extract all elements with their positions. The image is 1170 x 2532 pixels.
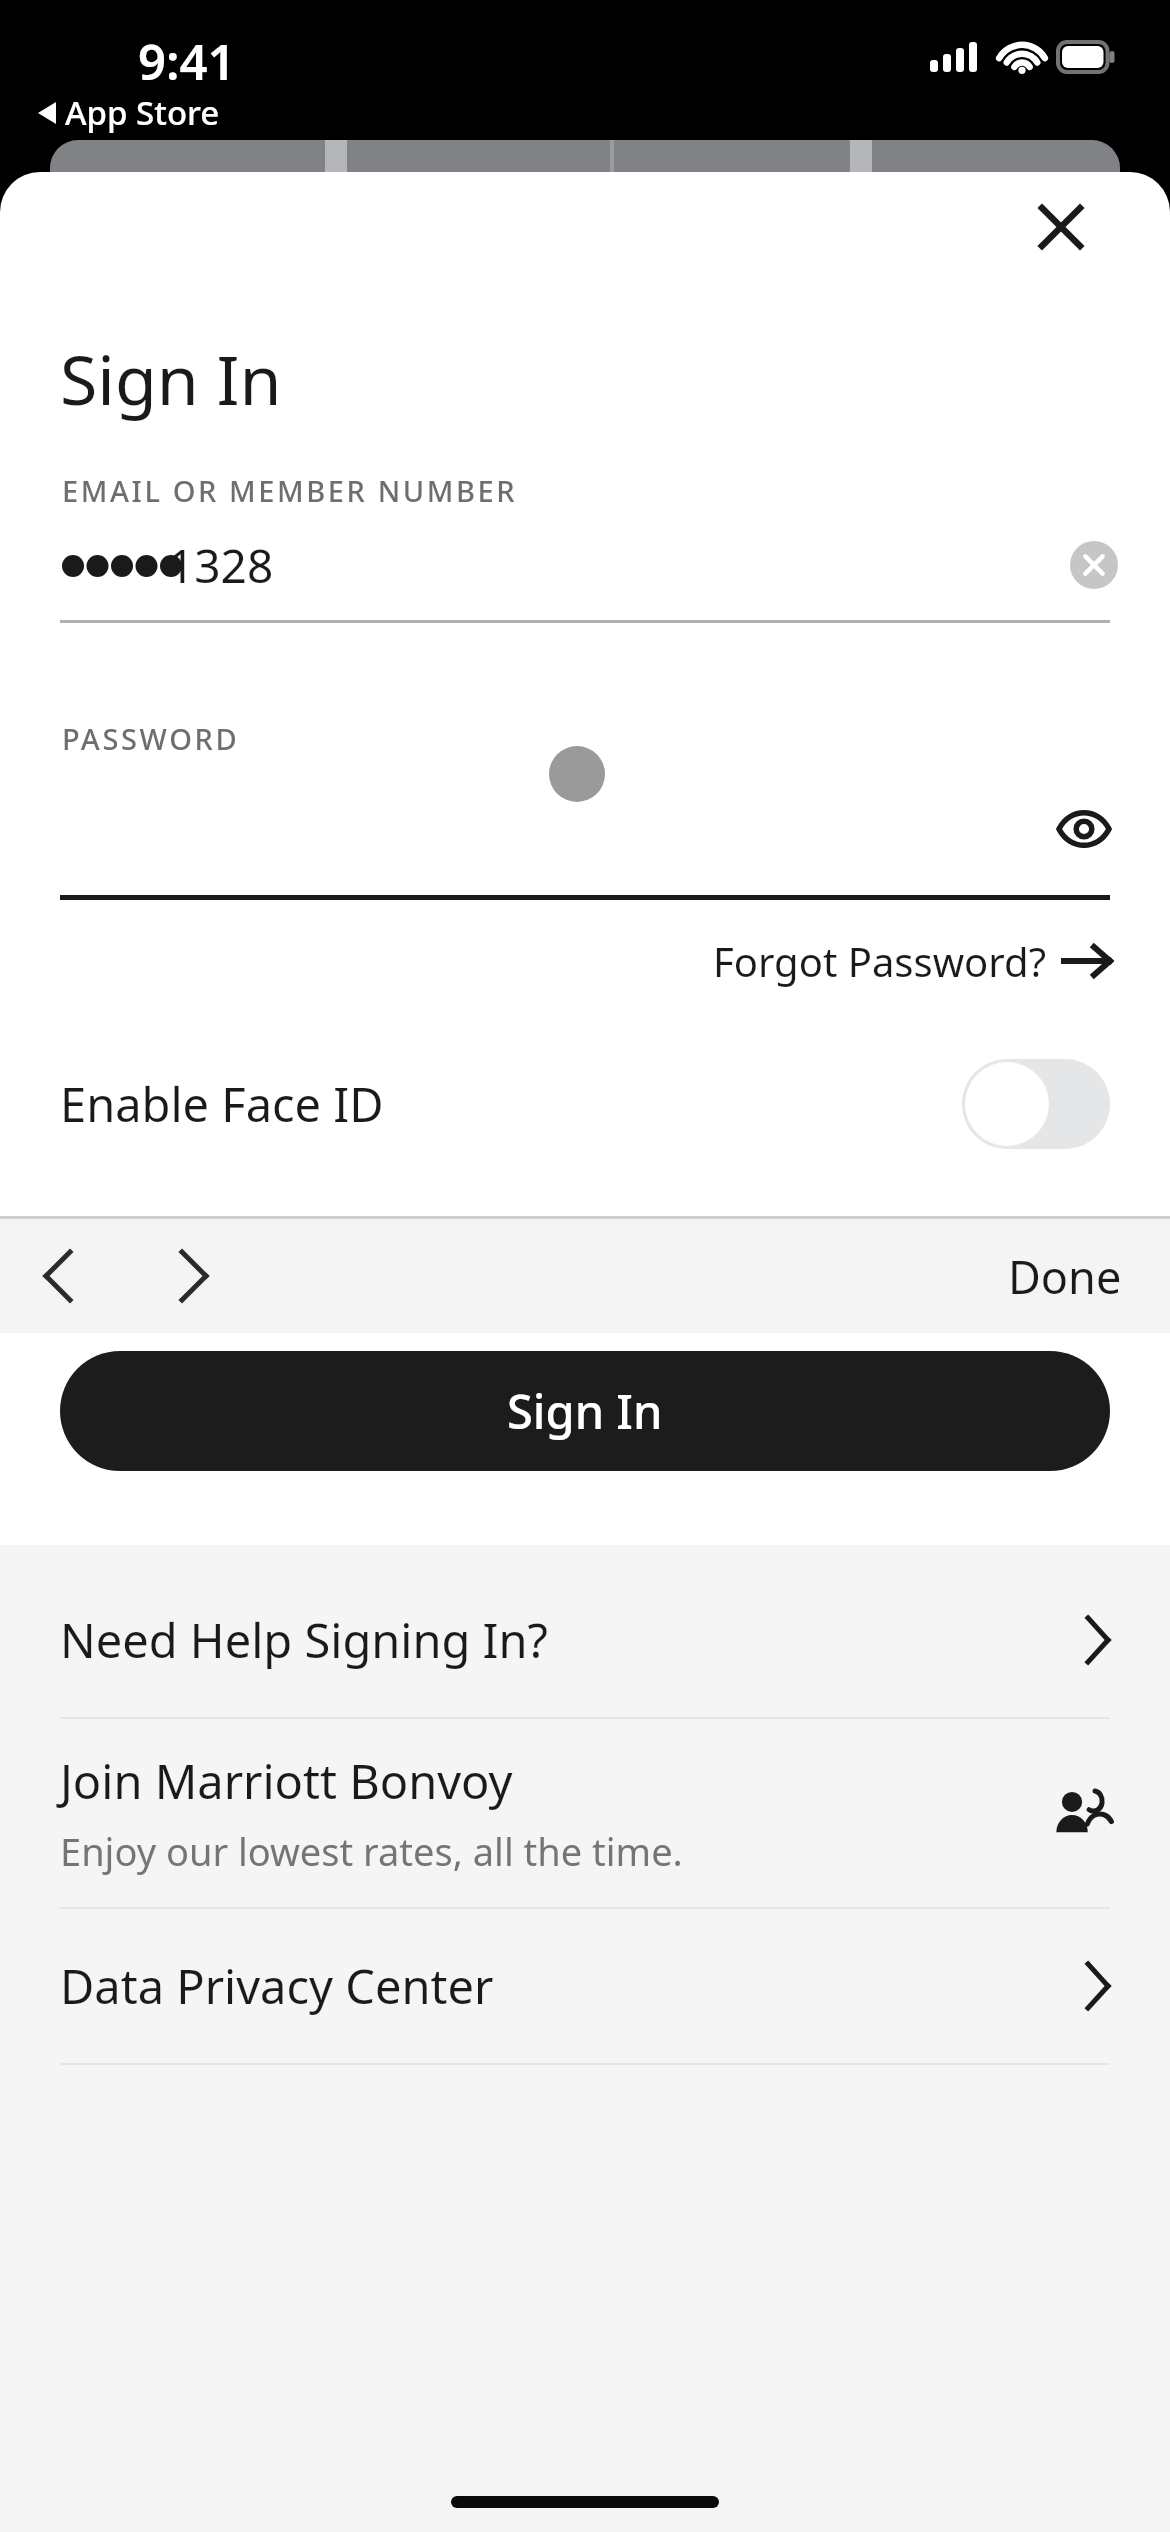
button[interactable]: Close xyxy=(1028,194,1094,260)
staticText: 9:41 xyxy=(138,28,236,95)
staticText: Sign In xyxy=(60,332,282,425)
button[interactable]: Done xyxy=(996,1234,1134,1319)
button[interactable]: Forgot Password? xyxy=(713,934,1110,988)
button[interactable]: Next field xyxy=(160,1241,230,1311)
staticText: 1328 xyxy=(168,534,274,597)
staticText: Done xyxy=(1008,1246,1122,1307)
button[interactable]: Clear text xyxy=(1066,537,1122,593)
staticText: Data Privacy Center xyxy=(60,1954,494,2018)
staticText: PASSWORD xyxy=(62,719,240,758)
staticText: Need Help Signing In? xyxy=(60,1608,549,1672)
button[interactable]: Need Help Signing In? xyxy=(0,1563,1170,1717)
staticText: Join Marriott Bonvoy xyxy=(60,1749,513,1813)
button[interactable]: Previous field xyxy=(22,1241,92,1311)
button[interactable]: Join Marriott Bonvoy xyxy=(0,1719,1170,1907)
button[interactable]: Show password xyxy=(1046,791,1122,867)
button[interactable]: Enable Face ID xyxy=(0,1044,1170,1164)
button[interactable]: Sign In xyxy=(60,1351,1110,1471)
staticText: EMAIL OR MEMBER NUMBER xyxy=(62,471,518,510)
button[interactable]: PASSWORD xyxy=(0,695,1170,895)
staticText: Enjoy our lowest rates, all the time. xyxy=(60,1825,683,1877)
staticText: App Store xyxy=(65,90,220,135)
button[interactable]: 1328 xyxy=(0,510,1170,620)
staticText: Forgot Password? xyxy=(713,934,1046,988)
button[interactable]: Data Privacy Center xyxy=(0,1909,1170,2063)
staticText: Enable Face ID xyxy=(60,1072,384,1136)
staticText: Sign In xyxy=(507,1379,663,1443)
